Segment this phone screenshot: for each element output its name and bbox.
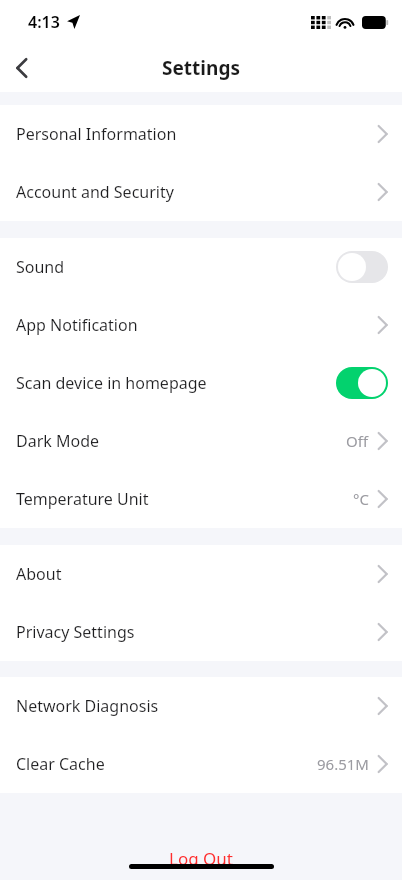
button[interactable]: Network Diagnosis	[0, 677, 402, 735]
button[interactable]: Toggle on	[336, 367, 388, 399]
button[interactable]: Sound	[0, 238, 402, 296]
staticText: Settings	[162, 55, 240, 81]
staticText: Off	[346, 431, 369, 451]
staticText: Log Out	[169, 847, 233, 870]
staticText: About	[16, 563, 62, 585]
staticText: Personal Information	[16, 123, 177, 145]
staticText: Sound	[16, 256, 65, 278]
button[interactable]: Scan device in homepage	[0, 354, 402, 412]
button[interactable]: Account and Security	[0, 163, 402, 221]
staticText: Clear Cache	[16, 753, 105, 775]
staticText: Account and Security	[16, 181, 174, 203]
staticText: Scan device in homepage	[16, 372, 207, 394]
button[interactable]: Temperature Unit	[0, 470, 402, 528]
button[interactable]: App Notification	[0, 296, 402, 354]
button[interactable]: About	[0, 545, 402, 603]
button[interactable]: Back	[0, 46, 44, 90]
button[interactable]: Privacy Settings	[0, 603, 402, 661]
staticText: Network Diagnosis	[16, 695, 159, 717]
button[interactable]: Log Out	[0, 836, 402, 880]
staticText: Privacy Settings	[16, 621, 135, 643]
staticText: °C	[353, 489, 369, 509]
staticText: Dark Mode	[16, 430, 100, 452]
staticText: 96.51M	[317, 754, 369, 774]
button[interactable]: Personal Information	[0, 105, 402, 163]
staticText: Temperature Unit	[16, 488, 149, 510]
staticText: App Notification	[16, 314, 138, 336]
button[interactable]: Dark Mode	[0, 412, 402, 470]
button[interactable]: Clear Cache	[0, 735, 402, 793]
staticText: 4:13	[28, 11, 60, 33]
button[interactable]: Toggle off	[336, 251, 388, 283]
